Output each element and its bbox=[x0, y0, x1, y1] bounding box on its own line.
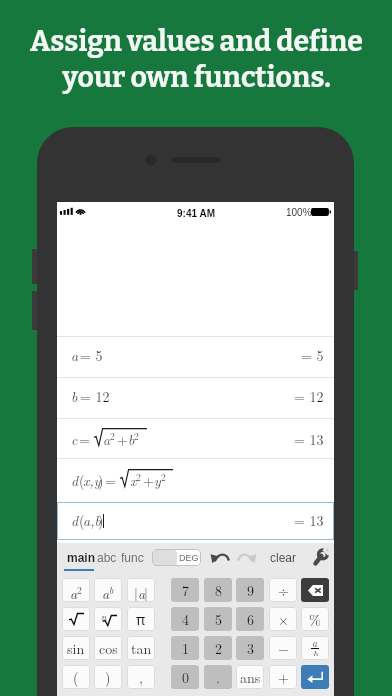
staticText: 3 bbox=[247, 638, 254, 658]
staticText: | bbox=[144, 583, 148, 601]
staticText: 9 bbox=[247, 580, 254, 600]
button[interactable]: a bbox=[301, 636, 329, 660]
button[interactable]: 0 bbox=[171, 665, 199, 689]
button[interactable]: n bbox=[94, 607, 122, 631]
button[interactable] bbox=[62, 607, 90, 631]
button[interactable] bbox=[301, 578, 329, 602]
staticText: + bbox=[278, 667, 289, 687]
staticText: 100% bbox=[286, 207, 312, 218]
staticText: b bbox=[71, 386, 78, 406]
button[interactable]: 8 bbox=[204, 578, 232, 602]
staticText: 0 bbox=[182, 667, 189, 687]
staticText: = 13 bbox=[294, 429, 324, 449]
button[interactable]: Settings bbox=[312, 549, 328, 567]
button[interactable]: , bbox=[127, 665, 155, 689]
staticText: a bbox=[102, 583, 110, 601]
staticText: 8 bbox=[215, 580, 222, 600]
staticText: a bbox=[103, 429, 111, 449]
staticText: Assign values and define bbox=[30, 24, 363, 58]
staticText: y bbox=[154, 470, 161, 490]
staticText: ans bbox=[240, 667, 261, 687]
staticText: a,b bbox=[83, 510, 101, 530]
staticText: 6 bbox=[247, 609, 254, 629]
staticText: , bbox=[139, 667, 143, 687]
staticText: your own functions. bbox=[62, 60, 331, 94]
staticText: tan bbox=[131, 638, 152, 658]
staticText: c bbox=[71, 429, 78, 449]
button[interactable] bbox=[57, 377, 334, 418]
staticText: % bbox=[309, 609, 321, 629]
staticText: = 12 bbox=[80, 386, 110, 406]
staticText: 1 bbox=[182, 638, 189, 658]
staticText: ( bbox=[79, 510, 85, 530]
button[interactable] bbox=[57, 458, 334, 502]
staticText: ÷ bbox=[278, 580, 289, 600]
button[interactable]: 3 bbox=[236, 636, 264, 660]
button[interactable]: clear bbox=[270, 546, 304, 570]
staticText: ) bbox=[98, 470, 104, 490]
button[interactable]: + bbox=[269, 665, 297, 689]
button[interactable]: cos bbox=[94, 636, 122, 660]
staticText: × bbox=[278, 609, 289, 629]
button[interactable]: | bbox=[127, 578, 155, 602]
staticText: 4 bbox=[182, 609, 189, 629]
staticText: = 5 bbox=[80, 345, 103, 365]
button[interactable]: 4 bbox=[171, 607, 199, 631]
button[interactable]: 1 bbox=[171, 636, 199, 660]
staticText: cos bbox=[99, 638, 118, 658]
button[interactable]: main bbox=[64, 543, 94, 572]
button[interactable]: Redo bbox=[237, 550, 257, 565]
button[interactable]: a bbox=[62, 578, 90, 602]
staticText: = bbox=[79, 429, 90, 449]
staticText: b bbox=[128, 429, 135, 449]
staticText: 2 bbox=[215, 638, 222, 658]
button[interactable]: tan bbox=[127, 636, 155, 660]
staticText: = 12 bbox=[294, 386, 324, 406]
button[interactable]: 5 bbox=[204, 607, 232, 631]
button[interactable]: . bbox=[204, 665, 232, 689]
staticText: 2 bbox=[161, 470, 166, 483]
button[interactable]: sin bbox=[62, 636, 90, 660]
staticText: x bbox=[130, 470, 137, 490]
button[interactable]: × bbox=[269, 607, 297, 631]
button[interactable]: 9 bbox=[236, 578, 264, 602]
button[interactable]: DEG bbox=[152, 549, 201, 566]
staticText: = bbox=[105, 470, 116, 490]
staticText: a bbox=[70, 583, 78, 601]
button[interactable]: ( bbox=[62, 665, 90, 689]
staticText: 2 bbox=[110, 429, 115, 442]
button[interactable]: 2 bbox=[204, 636, 232, 660]
staticText: . bbox=[216, 667, 220, 687]
button[interactable]: ) bbox=[94, 665, 122, 689]
staticText: x,y bbox=[83, 470, 101, 490]
staticText: a bbox=[138, 583, 146, 601]
staticText: π bbox=[136, 610, 146, 629]
button[interactable] bbox=[57, 502, 334, 540]
staticText: func bbox=[121, 551, 144, 564]
button[interactable]: abc bbox=[95, 543, 119, 572]
button[interactable]: ans bbox=[236, 665, 264, 689]
button[interactable]: π bbox=[127, 607, 155, 631]
button[interactable]: % bbox=[301, 607, 329, 631]
button[interactable] bbox=[57, 336, 334, 376]
button[interactable]: Undo bbox=[210, 550, 230, 565]
staticText: | bbox=[134, 583, 138, 601]
staticText: d bbox=[71, 510, 79, 530]
staticText: a bbox=[312, 636, 318, 650]
button[interactable] bbox=[301, 665, 329, 689]
button[interactable]: ÷ bbox=[269, 578, 297, 602]
button[interactable]: 7 bbox=[171, 578, 199, 602]
button[interactable] bbox=[57, 418, 334, 459]
button[interactable]: func bbox=[119, 543, 145, 572]
staticText: ) bbox=[98, 510, 104, 530]
button[interactable]: a bbox=[94, 578, 122, 602]
button[interactable]: 6 bbox=[236, 607, 264, 631]
staticText: 2 bbox=[136, 470, 141, 483]
staticText: = 13 bbox=[294, 510, 324, 530]
button[interactable]: − bbox=[269, 636, 297, 660]
staticText: n bbox=[101, 610, 107, 623]
staticText: sin bbox=[67, 638, 85, 658]
staticText: 9:41 AM bbox=[177, 208, 215, 219]
staticText: 7 bbox=[182, 580, 189, 600]
staticText: = 5 bbox=[301, 345, 324, 365]
